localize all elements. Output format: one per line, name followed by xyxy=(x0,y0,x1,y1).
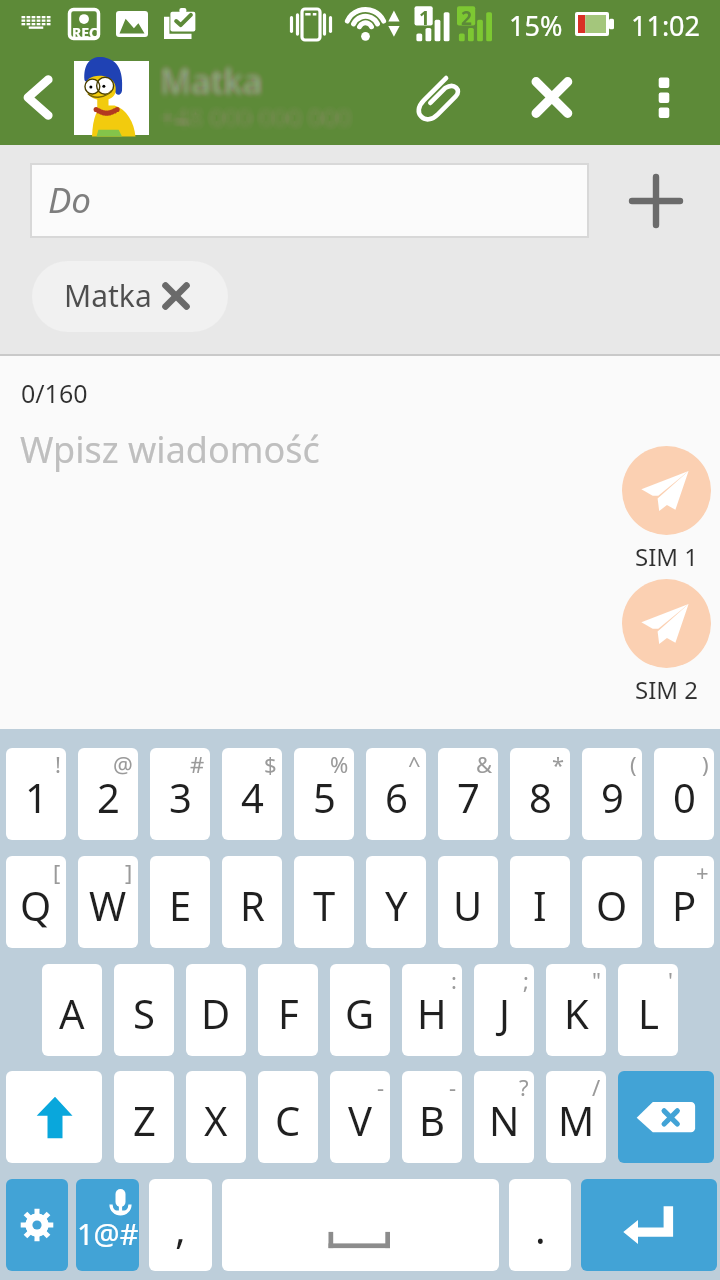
staticText: Matka xyxy=(161,64,264,110)
staticText: +48 000 000 000 xyxy=(166,104,358,138)
staticText: Matka xyxy=(161,67,264,113)
staticText: +48 000 000 000 xyxy=(164,106,356,140)
button[interactable]: P xyxy=(654,856,714,948)
staticText: +48 000 000 000 xyxy=(152,97,344,131)
button[interactable]: SIM 2 xyxy=(622,579,711,706)
button[interactable]: F xyxy=(258,964,318,1056)
staticText: +48 000 000 000 xyxy=(158,92,350,126)
button[interactable]: Space xyxy=(222,1179,499,1271)
button[interactable]: Attach xyxy=(405,48,475,145)
button[interactable]: E xyxy=(150,856,210,948)
button[interactable]: Keyboard settings xyxy=(6,1179,68,1271)
button[interactable]: 5 xyxy=(294,748,354,840)
button[interactable]: Back xyxy=(8,48,66,145)
button[interactable]: D xyxy=(186,964,246,1056)
staticText: +48 000 000 000 xyxy=(165,104,357,138)
button[interactable]: 0 xyxy=(654,748,714,840)
staticText: +48 000 000 000 xyxy=(158,107,350,141)
button[interactable]: R xyxy=(222,856,282,948)
button[interactable]: U xyxy=(438,856,498,948)
button[interactable]: 8 xyxy=(510,748,570,840)
staticText: +48 000 000 000 xyxy=(159,91,351,125)
staticText: +48 000 000 000 xyxy=(162,93,354,127)
button[interactable]: N xyxy=(474,1071,534,1163)
staticText: +48 000 000 000 xyxy=(152,96,344,130)
staticText: Matka xyxy=(162,64,265,110)
button[interactable]: S xyxy=(114,964,174,1056)
button[interactable]: L xyxy=(618,964,678,1056)
button[interactable]: I xyxy=(510,856,570,948)
button[interactable]: 7 xyxy=(438,748,498,840)
button[interactable]: 4 xyxy=(222,748,282,840)
staticText: +48 000 000 000 xyxy=(154,100,346,134)
button[interactable]: Add recipient xyxy=(616,161,696,241)
button[interactable]: T xyxy=(294,856,354,948)
staticText: Matka xyxy=(164,51,267,97)
staticText: +48 000 000 000 xyxy=(163,93,355,127)
staticText: Matka xyxy=(156,52,259,98)
staticText: Matka xyxy=(162,60,265,106)
button[interactable]: SIM 1 xyxy=(622,446,711,573)
button[interactable]: Do xyxy=(31,164,588,237)
button[interactable]: J xyxy=(474,964,534,1056)
staticText: +48 000 000 000 xyxy=(168,102,360,136)
staticText: +48 000 000 000 xyxy=(156,98,348,132)
button[interactable]: , xyxy=(149,1179,212,1271)
button[interactable]: G xyxy=(330,964,390,1056)
button[interactable]: Z xyxy=(114,1071,174,1163)
button[interactable]: Shift xyxy=(6,1071,102,1163)
button[interactable]: O xyxy=(582,856,642,948)
staticText: +48 000 000 000 xyxy=(163,97,355,131)
button[interactable]: C xyxy=(258,1071,318,1163)
staticText: Matka xyxy=(157,50,260,96)
button[interactable]: Close xyxy=(512,48,592,145)
button[interactable]: Enter xyxy=(581,1179,717,1271)
staticText: Matka xyxy=(163,64,266,110)
button[interactable]: Y xyxy=(366,856,426,948)
button[interactable]: K xyxy=(546,964,606,1056)
button[interactable]: 2 xyxy=(78,748,138,840)
button[interactable]: A xyxy=(42,964,102,1056)
button[interactable]: M xyxy=(546,1071,606,1163)
staticText: +48 000 000 000 xyxy=(165,101,357,135)
button[interactable]: Delete xyxy=(618,1071,714,1163)
button[interactable]: X xyxy=(186,1071,246,1163)
staticText: ( xyxy=(630,749,637,779)
button[interactable]: More options xyxy=(628,48,700,145)
staticText: +48 000 000 000 xyxy=(155,104,347,138)
staticText: Matka xyxy=(161,58,264,104)
button[interactable]: H xyxy=(402,964,462,1056)
button[interactable]: Q xyxy=(6,856,66,948)
staticText: +48 000 000 000 xyxy=(159,102,351,136)
staticText: Matka xyxy=(167,60,270,106)
staticText: Matka xyxy=(153,58,256,104)
staticText: +48 000 000 000 xyxy=(163,104,355,138)
staticText: +48 000 000 000 xyxy=(156,96,348,130)
staticText: +48 000 000 000 xyxy=(162,98,354,132)
button[interactable]: Contact photo xyxy=(74,61,149,135)
button[interactable]: B xyxy=(402,1071,462,1163)
staticText: Matka xyxy=(153,61,256,107)
staticText: +48 000 000 000 xyxy=(163,101,355,135)
button[interactable]: V xyxy=(330,1071,390,1163)
staticText: +48 000 000 000 xyxy=(158,99,350,133)
staticText: +48 000 000 000 xyxy=(160,96,352,130)
button[interactable]: . xyxy=(509,1179,571,1271)
staticText: +48 000 000 000 xyxy=(163,105,355,139)
staticText: Matka xyxy=(164,66,267,112)
staticText: +48 000 000 000 xyxy=(161,94,353,128)
button[interactable]: Matka xyxy=(158,48,398,145)
button[interactable]: W xyxy=(78,856,138,948)
button[interactable]: 1@# xyxy=(76,1179,139,1271)
staticText: +48 000 000 000 xyxy=(157,101,349,135)
staticText: +48 000 000 000 xyxy=(159,98,351,132)
button[interactable]: 1 xyxy=(6,748,66,840)
staticText: +48 000 000 000 xyxy=(162,107,354,141)
button[interactable]: Matka xyxy=(32,261,228,332)
button[interactable]: 9 xyxy=(582,748,642,840)
button[interactable]: 3 xyxy=(150,748,210,840)
button[interactable]: 6 xyxy=(366,748,426,840)
staticText: ? xyxy=(519,1072,529,1102)
staticText: +48 000 000 000 xyxy=(159,109,351,143)
staticText: Matka xyxy=(155,65,258,111)
